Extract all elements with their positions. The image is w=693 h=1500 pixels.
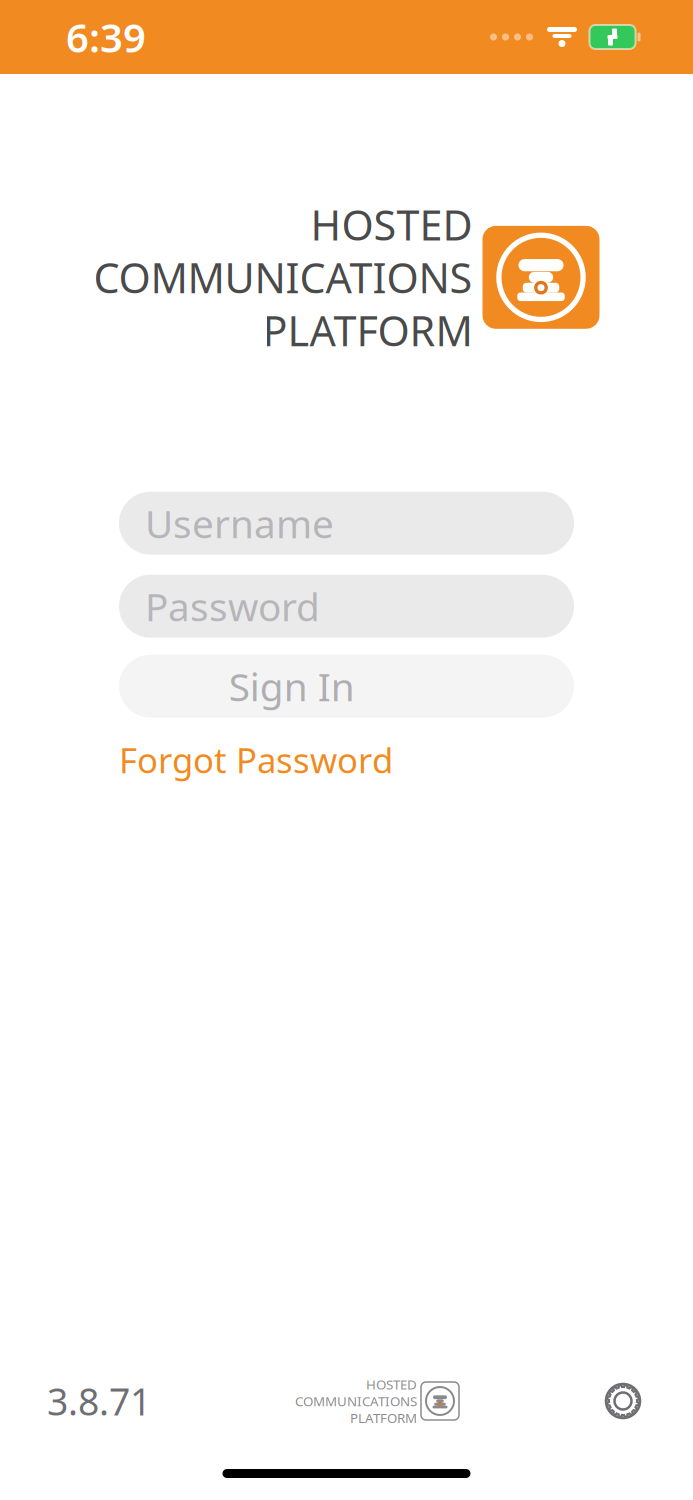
button[interactable]: Settings xyxy=(603,1381,643,1421)
button[interactable]: Password xyxy=(119,575,574,638)
staticText: 3.8.71 xyxy=(47,1376,151,1426)
staticText: Forgot Password xyxy=(119,737,393,783)
staticText: COMMUNICATIONS xyxy=(295,1392,417,1410)
staticText: HOSTED xyxy=(310,197,472,252)
staticText: 6:39 xyxy=(66,10,146,63)
staticText: PLATFORM xyxy=(262,303,472,358)
button[interactable]: Sign In xyxy=(119,655,574,718)
staticText: Sign In xyxy=(229,660,355,712)
button[interactable]: Username xyxy=(119,492,574,555)
staticText: HOSTED xyxy=(366,1375,417,1393)
button[interactable]: Forgot Password xyxy=(119,737,393,783)
staticText: Username xyxy=(145,497,334,549)
staticText: PLATFORM xyxy=(350,1409,417,1427)
staticText: Password xyxy=(145,580,320,632)
staticText: COMMUNICATIONS xyxy=(93,250,472,305)
